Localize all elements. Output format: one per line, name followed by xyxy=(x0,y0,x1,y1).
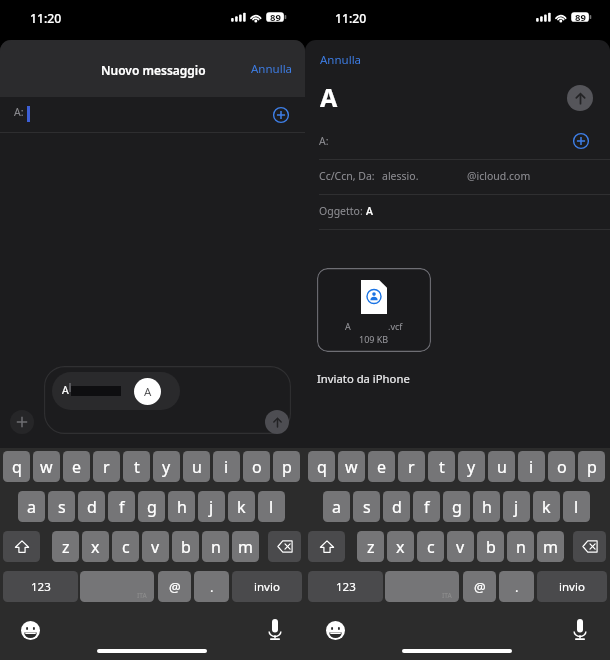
button[interactable]: q xyxy=(3,451,30,482)
button[interactable]: j xyxy=(198,491,225,522)
button[interactable]: x xyxy=(82,531,109,562)
staticText: alessio. xyxy=(382,169,419,183)
button[interactable]: p xyxy=(578,451,605,482)
button[interactable]: Invia xyxy=(567,85,593,111)
staticText: e xyxy=(72,456,82,478)
button[interactable]: a xyxy=(18,491,45,522)
button[interactable]: Dettatura xyxy=(263,618,287,642)
button[interactable]: u xyxy=(488,451,515,482)
button[interactable]: @ xyxy=(158,571,191,602)
button[interactable]: . xyxy=(194,571,229,602)
staticText: i xyxy=(224,456,229,478)
staticText: A xyxy=(144,384,152,400)
button[interactable]: d xyxy=(78,491,105,522)
button[interactable]: f xyxy=(413,491,440,522)
button[interactable]: . xyxy=(499,571,534,602)
button[interactable]: f xyxy=(108,491,135,522)
button[interactable]: Oggetto: xyxy=(305,195,610,229)
button[interactable]: z xyxy=(52,531,79,562)
button[interactable]: A xyxy=(317,268,431,352)
button[interactable]: s xyxy=(48,491,75,522)
staticText: e xyxy=(377,456,387,478)
button[interactable]: r xyxy=(93,451,120,482)
button[interactable]: c xyxy=(417,531,444,562)
button[interactable]: m xyxy=(537,531,564,562)
button[interactable]: l xyxy=(563,491,590,522)
button[interactable]: n xyxy=(507,531,534,562)
button[interactable]: 123 xyxy=(308,571,383,602)
button[interactable]: invio xyxy=(537,571,607,602)
button[interactable]: o xyxy=(548,451,575,482)
button[interactable]: Aggiungi contatto xyxy=(270,104,292,126)
button[interactable]: Cancella xyxy=(573,531,606,562)
button[interactable]: h xyxy=(473,491,500,522)
staticText: t xyxy=(439,456,445,478)
button[interactable]: a xyxy=(323,491,350,522)
button[interactable]: 123 xyxy=(3,571,78,602)
button[interactable]: j xyxy=(503,491,530,522)
button[interactable]: g xyxy=(138,491,165,522)
button[interactable]: invio xyxy=(232,571,302,602)
button[interactable]: w xyxy=(338,451,365,482)
button[interactable]: Maiuscole xyxy=(308,531,345,562)
button[interactable]: Annulla xyxy=(311,46,371,74)
button[interactable]: e xyxy=(63,451,90,482)
button[interactable]: Allega xyxy=(10,410,34,434)
button[interactable]: n xyxy=(202,531,229,562)
button[interactable]: i xyxy=(213,451,240,482)
button[interactable]: Invia xyxy=(265,410,289,434)
button[interactable]: p xyxy=(273,451,300,482)
button[interactable]: s xyxy=(353,491,380,522)
staticText: Inviato da iPhone xyxy=(317,371,410,386)
button[interactable]: Spazio xyxy=(80,571,154,602)
button[interactable]: Cancella xyxy=(268,531,301,562)
button[interactable]: l xyxy=(258,491,285,522)
button[interactable]: v xyxy=(142,531,169,562)
staticText: @icloud.com xyxy=(467,169,531,183)
button[interactable]: w xyxy=(33,451,60,482)
button[interactable]: k xyxy=(228,491,255,522)
staticText: Cc/Ccn, Da: xyxy=(319,169,375,183)
button[interactable]: A xyxy=(52,372,180,410)
button[interactable]: y xyxy=(153,451,180,482)
button[interactable]: v xyxy=(447,531,474,562)
button[interactable]: A: xyxy=(305,124,610,159)
button[interactable]: b xyxy=(172,531,199,562)
button[interactable]: r xyxy=(398,451,425,482)
button[interactable]: h xyxy=(168,491,195,522)
staticText: u xyxy=(192,456,202,478)
button[interactable]: z xyxy=(357,531,384,562)
button[interactable]: Cc/Ccn, Da: xyxy=(305,160,610,194)
button[interactable]: m xyxy=(232,531,259,562)
button[interactable]: g xyxy=(443,491,470,522)
button[interactable]: y xyxy=(458,451,485,482)
button[interactable]: e xyxy=(368,451,395,482)
button[interactable]: Maiuscole xyxy=(3,531,40,562)
button[interactable]: Emoji xyxy=(20,620,41,641)
button[interactable]: Dettatura xyxy=(568,618,592,642)
button[interactable]: o xyxy=(243,451,270,482)
staticText: q xyxy=(12,456,22,478)
button[interactable]: d xyxy=(383,491,410,522)
button[interactable]: i xyxy=(518,451,545,482)
button[interactable]: k xyxy=(533,491,560,522)
button[interactable]: q xyxy=(308,451,335,482)
staticText: c xyxy=(427,536,435,558)
button[interactable]: b xyxy=(477,531,504,562)
button[interactable]: c xyxy=(112,531,139,562)
staticText: z xyxy=(367,536,375,558)
staticText: A xyxy=(366,204,373,218)
button[interactable]: A: xyxy=(0,98,305,132)
button[interactable]: Spazio xyxy=(385,571,459,602)
button[interactable]: x xyxy=(387,531,414,562)
button[interactable]: Emoji xyxy=(325,620,346,641)
button[interactable]: t xyxy=(428,451,455,482)
button[interactable]: Annulla xyxy=(242,55,302,83)
button[interactable]: @ xyxy=(463,571,496,602)
staticText: k xyxy=(237,496,246,518)
button[interactable]: t xyxy=(123,451,150,482)
button[interactable]: u xyxy=(183,451,210,482)
button[interactable]: Aggiungi contatto xyxy=(570,130,592,152)
staticText: @ xyxy=(474,578,486,596)
staticText: 109 KB xyxy=(359,333,389,345)
